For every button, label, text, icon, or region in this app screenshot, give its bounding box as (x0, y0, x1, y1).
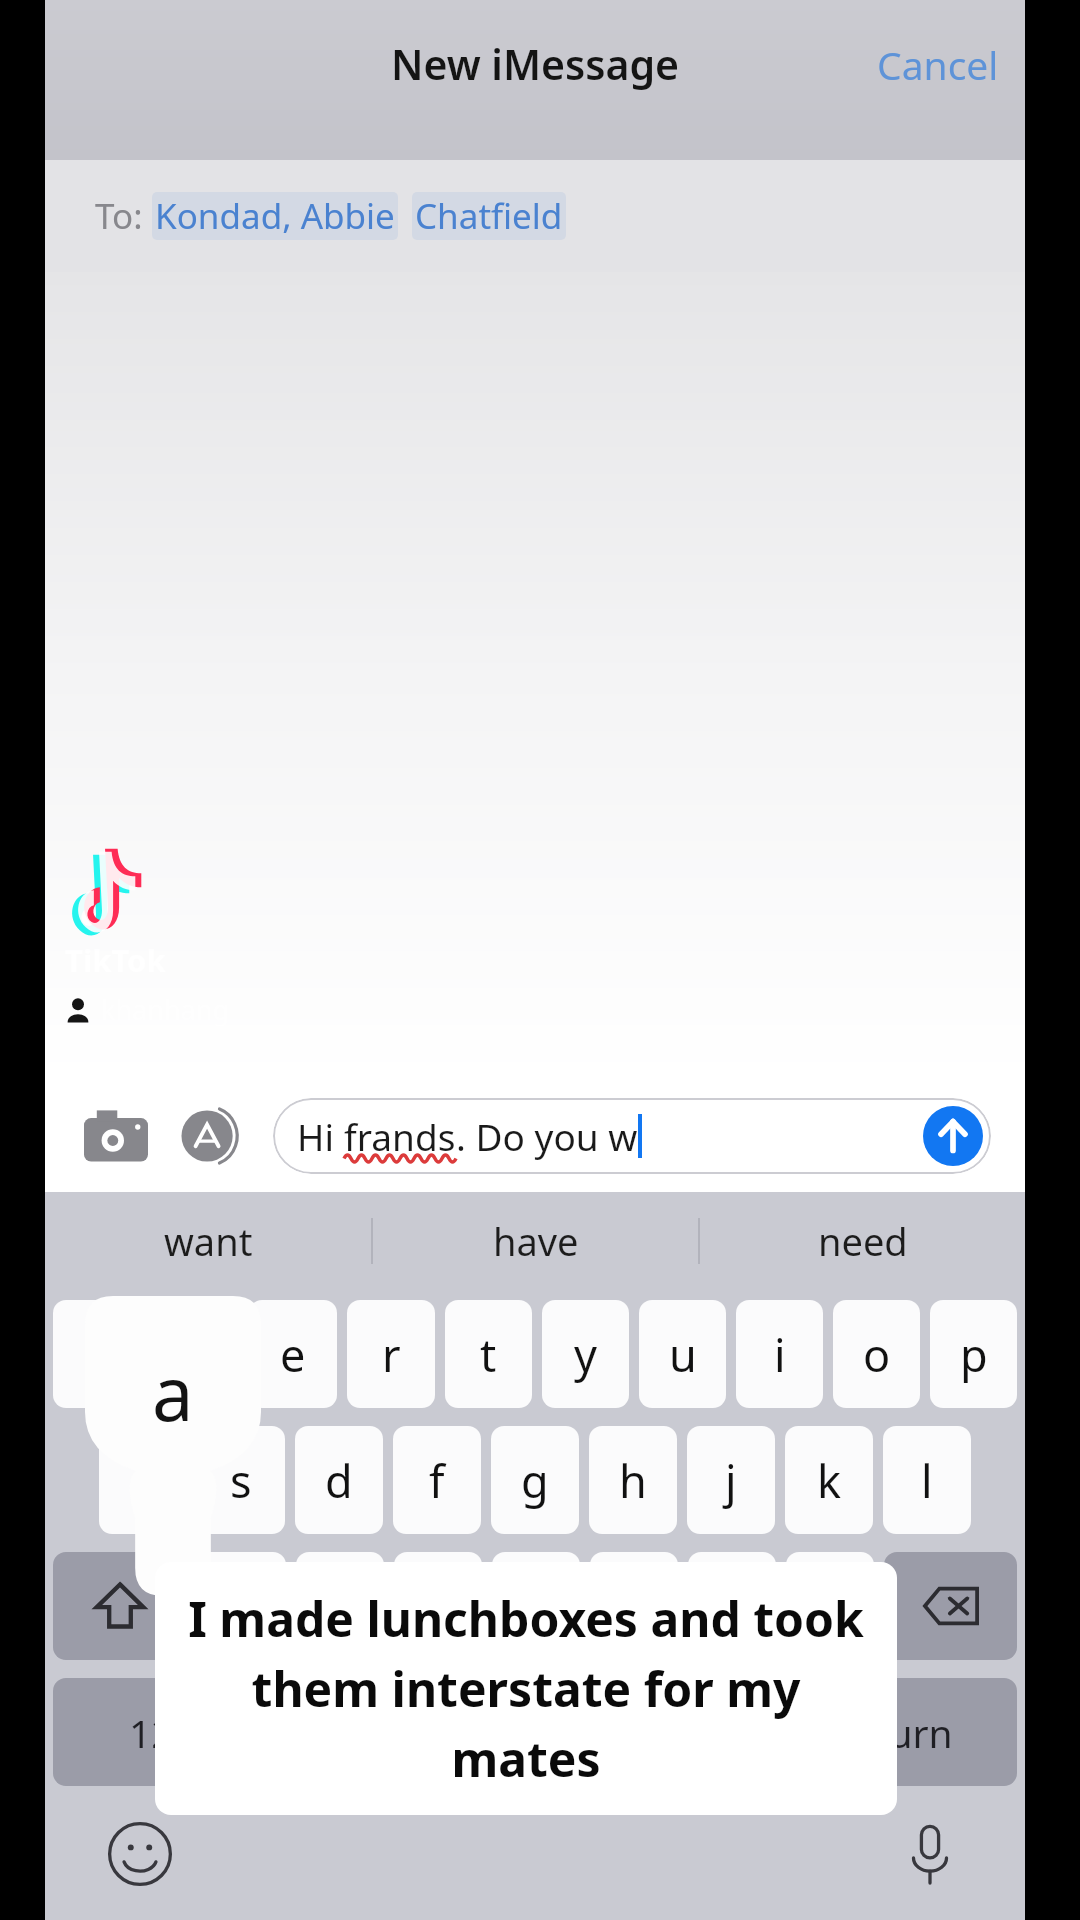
button[interactable]: Hi (273, 1098, 991, 1174)
button[interactable]: d (295, 1426, 383, 1534)
staticText: have (493, 1215, 579, 1267)
button[interactable]: Dictation (893, 1817, 967, 1891)
staticText: frands (344, 1111, 456, 1161)
button[interactable]: t (445, 1300, 532, 1408)
staticText: m (809, 1576, 852, 1637)
button[interactable]: have (373, 1192, 698, 1290)
button[interactable]: Cancel (851, 24, 1025, 105)
staticText: I made lunchboxes and took them intersta… (179, 1586, 873, 1791)
button[interactable]: To: (45, 160, 1025, 272)
button[interactable]: y (542, 1300, 629, 1408)
button[interactable]: w (151, 1300, 239, 1408)
staticText: g (521, 1450, 549, 1511)
staticText: New iMessage (391, 36, 680, 92)
staticText: y (574, 1324, 597, 1385)
staticText: p (960, 1324, 988, 1385)
staticText: Kondad, Abbie (155, 192, 395, 240)
staticText: o (863, 1324, 891, 1385)
button[interactable]: space (281, 1678, 762, 1786)
button[interactable]: g (491, 1426, 579, 1534)
staticText: l (921, 1450, 933, 1511)
staticText: r (382, 1324, 401, 1385)
staticText: Chatfield (415, 192, 563, 240)
staticText: need (818, 1215, 908, 1267)
staticText: space (469, 1706, 575, 1759)
button[interactable]: Backspace (884, 1552, 1017, 1660)
staticText: n (718, 1576, 746, 1637)
button[interactable]: s (197, 1426, 285, 1534)
staticText: return (837, 1706, 953, 1759)
staticText: w (177, 1324, 213, 1385)
button[interactable]: l (883, 1426, 971, 1534)
staticText: To: (95, 192, 152, 240)
staticText: f (429, 1450, 445, 1511)
staticText: s (230, 1450, 252, 1511)
button[interactable]: b (590, 1552, 678, 1660)
button[interactable]: o (833, 1300, 920, 1408)
button[interactable]: r (347, 1300, 435, 1408)
staticText: j (725, 1450, 737, 1511)
staticText: want (164, 1215, 253, 1267)
button[interactable]: Emoji (103, 1817, 177, 1891)
button[interactable]: x (296, 1552, 384, 1660)
button[interactable]: u (639, 1300, 726, 1408)
staticText: u (669, 1324, 697, 1385)
staticText: c (427, 1576, 449, 1637)
button[interactable]: e (249, 1300, 337, 1408)
button[interactable]: m (786, 1552, 874, 1660)
staticText: Cancel (877, 38, 999, 91)
button[interactable]: h (589, 1426, 677, 1534)
staticText: i (774, 1324, 786, 1385)
staticText: 123 (129, 1706, 196, 1759)
staticText: t (480, 1324, 497, 1385)
button[interactable]: q (53, 1300, 141, 1408)
button[interactable]: Shift (53, 1552, 187, 1660)
button[interactable]: k (785, 1426, 873, 1534)
button[interactable]: f (393, 1426, 481, 1534)
staticText: e (280, 1324, 306, 1385)
staticText: z (231, 1576, 253, 1637)
staticText: h (619, 1450, 647, 1511)
staticText: Hi (297, 1111, 344, 1161)
button[interactable]: c (394, 1552, 482, 1660)
staticText: a (152, 1342, 194, 1443)
button[interactable]: want (45, 1192, 371, 1290)
staticText: b (620, 1576, 648, 1637)
button[interactable]: n (688, 1552, 776, 1660)
staticText: . Do you w (456, 1111, 638, 1161)
button[interactable]: a (99, 1426, 187, 1534)
button[interactable]: v (492, 1552, 580, 1660)
staticText: k (817, 1450, 842, 1511)
button[interactable]: Send (922, 1105, 984, 1167)
button[interactable]: Camera (79, 1099, 153, 1173)
staticText: x (328, 1576, 352, 1637)
button[interactable]: return (772, 1678, 1017, 1786)
button[interactable]: 123 (53, 1678, 271, 1786)
button[interactable]: p (930, 1300, 1017, 1408)
button[interactable]: i (736, 1300, 823, 1408)
button[interactable]: z (197, 1552, 286, 1660)
button[interactable]: need (700, 1192, 1025, 1290)
staticText: v (525, 1576, 548, 1637)
button[interactable]: App Store (175, 1102, 243, 1170)
staticText: d (325, 1450, 353, 1511)
button[interactable]: j (687, 1426, 775, 1534)
